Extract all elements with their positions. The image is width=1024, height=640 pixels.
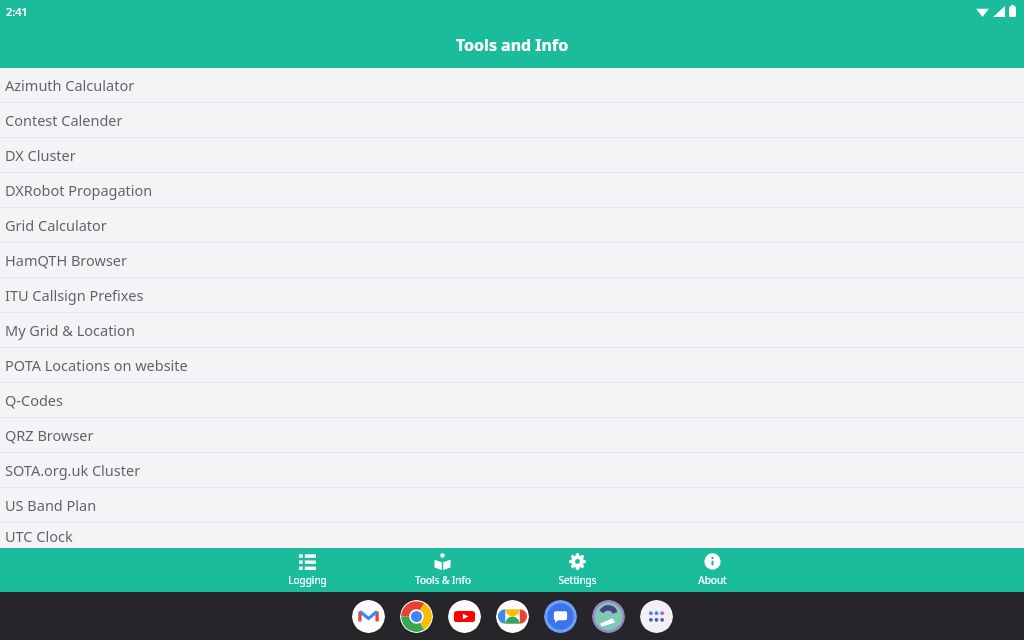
staticText: Q-Codes bbox=[5, 390, 63, 410]
button[interactable]: ITU Callsign Prefixes bbox=[0, 278, 1024, 313]
button[interactable]: Contest Calender bbox=[0, 103, 1024, 138]
button[interactable]: Chrome bbox=[400, 600, 433, 633]
button[interactable]: SOTA.org.uk Cluster bbox=[0, 453, 1024, 488]
button[interactable]: DXRobot Propagation bbox=[0, 173, 1024, 208]
button[interactable]: Q-Codes bbox=[0, 383, 1024, 418]
staticText: About bbox=[698, 573, 727, 587]
button[interactable]: Azimuth Calculator bbox=[0, 68, 1024, 103]
staticText: 2:41 bbox=[6, 4, 28, 19]
staticText: POTA Locations on website bbox=[5, 355, 188, 375]
button[interactable]: Settings bbox=[510, 548, 645, 592]
staticText: UTC Clock bbox=[5, 526, 73, 546]
staticText: HamQTH Browser bbox=[5, 250, 128, 270]
button[interactable]: My Grid & Location bbox=[0, 313, 1024, 348]
button[interactable]: US Band Plan bbox=[0, 488, 1024, 523]
button[interactable]: Grid Calculator bbox=[0, 208, 1024, 243]
button[interactable]: POTA Locations on website bbox=[0, 348, 1024, 383]
staticText: Contest Calender bbox=[5, 110, 123, 130]
button[interactable]: YouTube bbox=[448, 600, 481, 633]
staticText: SOTA.org.uk Cluster bbox=[5, 460, 141, 480]
button[interactable]: Gmail bbox=[352, 600, 385, 633]
button[interactable]: Sketch app bbox=[592, 600, 625, 633]
button[interactable]: HamQTH Browser bbox=[0, 243, 1024, 278]
staticText: Tools & Info bbox=[415, 573, 471, 587]
button[interactable]: Logging bbox=[240, 548, 375, 592]
staticText: Settings bbox=[558, 573, 597, 587]
button[interactable]: All apps bbox=[640, 600, 673, 633]
staticText: Azimuth Calculator bbox=[5, 75, 135, 95]
staticText: Tools and Info bbox=[456, 34, 569, 56]
button[interactable]: Photos bbox=[496, 600, 529, 633]
button[interactable]: DX Cluster bbox=[0, 138, 1024, 173]
staticText: DXRobot Propagation bbox=[5, 180, 153, 200]
staticText: QRZ Browser bbox=[5, 425, 94, 445]
staticText: DX Cluster bbox=[5, 145, 76, 165]
staticText: My Grid & Location bbox=[5, 320, 135, 340]
staticText: Logging bbox=[288, 573, 327, 587]
staticText: Grid Calculator bbox=[5, 215, 107, 235]
button[interactable]: About bbox=[645, 548, 780, 592]
staticText: ITU Callsign Prefixes bbox=[5, 285, 144, 305]
button[interactable]: UTC Clock bbox=[0, 523, 1024, 548]
button[interactable]: QRZ Browser bbox=[0, 418, 1024, 453]
staticText: US Band Plan bbox=[5, 495, 97, 515]
button[interactable]: Messages bbox=[544, 600, 577, 633]
button[interactable]: Tools & Info bbox=[375, 548, 510, 592]
